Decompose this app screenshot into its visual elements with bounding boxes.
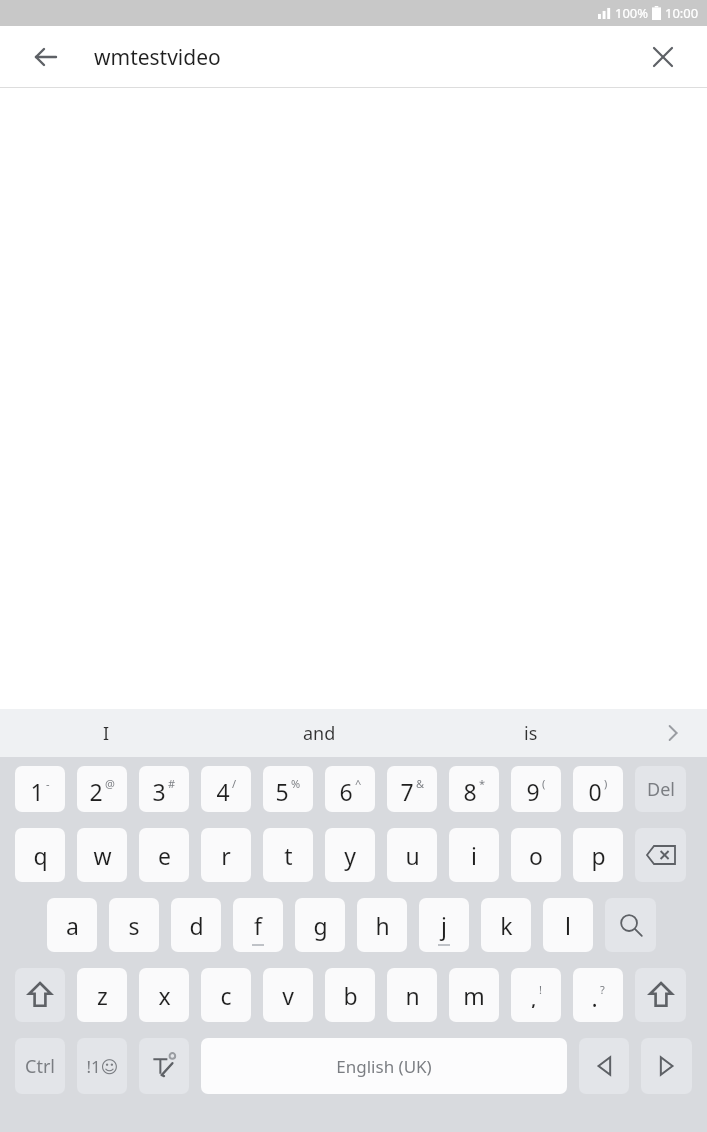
staticText: e [158, 840, 171, 871]
staticText: / [232, 776, 237, 791]
button[interactable]: h [357, 898, 407, 952]
button[interactable]: , [511, 968, 561, 1022]
staticText: m [463, 980, 485, 1011]
button[interactable]: 3 [139, 766, 189, 812]
button[interactable]: p [573, 828, 623, 882]
staticText: p [591, 840, 606, 871]
staticText: ! [539, 982, 542, 997]
button[interactable]: and [213, 709, 425, 757]
button[interactable]: Handwriting [139, 1038, 189, 1094]
button[interactable]: k [481, 898, 531, 952]
staticText: h [375, 910, 390, 941]
button[interactable]: 0 [573, 766, 623, 812]
staticText: - [46, 776, 50, 791]
staticText: English (UK) [336, 1055, 432, 1078]
button[interactable]: b [325, 968, 375, 1022]
button[interactable]: 4 [201, 766, 251, 812]
staticText: Del [647, 777, 675, 802]
staticText: y [344, 840, 356, 871]
button[interactable]: z [77, 968, 127, 1022]
button[interactable]: r [201, 828, 251, 882]
staticText: v [282, 980, 294, 1011]
button[interactable]: j [419, 898, 469, 952]
button[interactable]: wmtestvideo [94, 26, 617, 88]
button[interactable]: Shift [635, 968, 686, 1022]
button[interactable]: m [449, 968, 499, 1022]
button[interactable]: g [295, 898, 345, 952]
button[interactable]: Move cursor left [579, 1038, 629, 1094]
button[interactable]: q [15, 828, 65, 882]
button[interactable]: More suggestions [637, 709, 707, 757]
staticText: ) [604, 776, 608, 791]
button[interactable]: Search [605, 898, 656, 952]
staticText: u [405, 840, 420, 871]
staticText: g [313, 910, 328, 941]
staticText: ( [542, 776, 546, 791]
button[interactable]: t [263, 828, 313, 882]
staticText: d [189, 910, 204, 941]
button[interactable]: 5 [263, 766, 313, 812]
staticText: 4 [216, 776, 230, 802]
button[interactable]: Ctrl [15, 1038, 65, 1094]
button[interactable]: d [171, 898, 221, 952]
staticText: l [565, 910, 571, 941]
staticText: 10:00 [665, 4, 699, 22]
button[interactable]: a [47, 898, 97, 952]
button[interactable]: 9 [511, 766, 561, 812]
staticText: w [93, 840, 112, 871]
staticText: , [530, 982, 537, 1008]
button[interactable]: !1☺ [77, 1038, 127, 1094]
staticText: % [291, 776, 301, 791]
staticText: 5 [275, 776, 289, 802]
button[interactable]: Del [635, 766, 686, 812]
button[interactable]: . [573, 968, 623, 1022]
staticText: wmtestvideo [94, 43, 221, 72]
button[interactable]: Backspace [635, 828, 686, 882]
button[interactable]: u [387, 828, 437, 882]
button[interactable]: 2 [77, 766, 127, 812]
staticText: * [479, 776, 486, 791]
button[interactable]: o [511, 828, 561, 882]
staticText: 6 [339, 776, 353, 802]
staticText: 100% [615, 4, 649, 22]
button[interactable]: v [263, 968, 313, 1022]
button[interactable]: w [77, 828, 127, 882]
staticText: k [500, 910, 513, 941]
button[interactable]: English (UK) [201, 1038, 567, 1094]
staticText: 8 [463, 776, 477, 802]
staticText: o [529, 840, 543, 871]
button[interactable]: l [543, 898, 593, 952]
button[interactable]: Back [24, 35, 68, 79]
button[interactable]: i [449, 828, 499, 882]
staticText: s [128, 910, 140, 941]
staticText: x [158, 980, 171, 1011]
staticText: f [254, 910, 262, 941]
button[interactable]: e [139, 828, 189, 882]
staticText: 9 [526, 776, 540, 802]
button[interactable]: Move cursor right [641, 1038, 692, 1094]
button[interactable]: I [0, 709, 213, 757]
staticText: b [343, 980, 358, 1011]
button[interactable]: 8 [449, 766, 499, 812]
staticText: !1☺ [86, 1055, 119, 1078]
staticText: 1 [30, 776, 44, 802]
button[interactable]: c [201, 968, 251, 1022]
button[interactable]: 1 [15, 766, 65, 812]
staticText: is [524, 721, 538, 746]
staticText: ^ [355, 776, 362, 791]
staticText: t [284, 840, 293, 871]
staticText: @ [105, 776, 115, 791]
staticText: Ctrl [25, 1054, 55, 1079]
button[interactable]: n [387, 968, 437, 1022]
staticText: 7 [400, 776, 414, 802]
button[interactable]: Clear [641, 35, 685, 79]
button[interactable]: x [139, 968, 189, 1022]
button[interactable]: 7 [387, 766, 437, 812]
button[interactable]: s [109, 898, 159, 952]
button[interactable]: 6 [325, 766, 375, 812]
button[interactable]: y [325, 828, 375, 882]
staticText: and [303, 721, 336, 746]
button[interactable]: f [233, 898, 283, 952]
button[interactable]: is [425, 709, 637, 757]
button[interactable]: Shift [15, 968, 65, 1022]
